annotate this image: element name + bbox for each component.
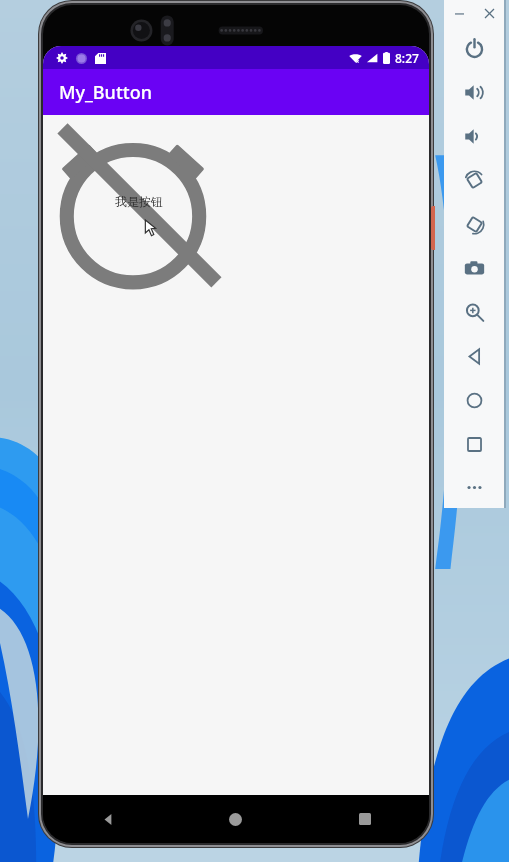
button[interactable]: Overview — [444, 422, 504, 466]
staticText: 8:27 — [395, 50, 419, 66]
button[interactable]: 我是按钮 — [53, 119, 225, 291]
staticText: 我是按钮 — [115, 194, 163, 209]
button[interactable]: Rotate right — [444, 202, 504, 246]
button[interactable]: Volume up — [444, 70, 504, 114]
button[interactable]: Close — [474, 0, 504, 26]
button[interactable]: Volume down — [444, 114, 504, 158]
staticText: My_Button — [59, 80, 152, 105]
button[interactable]: Take screenshot — [444, 246, 504, 290]
button[interactable]: My_Button — [43, 69, 429, 115]
button[interactable]: Minimize — [444, 0, 474, 26]
button[interactable]: Home — [444, 378, 504, 422]
button[interactable]: Back — [444, 334, 504, 378]
button[interactable]: Rotate left — [444, 158, 504, 202]
button[interactable]: Back — [43, 795, 171, 843]
button[interactable]: Zoom — [444, 290, 504, 334]
button[interactable]: Home — [171, 795, 300, 843]
button[interactable]: Recent apps — [300, 795, 429, 843]
button[interactable]: Power — [444, 26, 504, 70]
button[interactable]: More — [444, 466, 504, 508]
